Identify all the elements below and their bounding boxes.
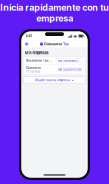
button[interactable]: Hosteleria Tax Logistics [24,57,85,64]
staticText: Tax [63,42,69,46]
button[interactable]: VER LIQUIDACION [56,67,83,72]
staticText: Hosteleria Tax Logistics [26,59,53,62]
staticText: Anadir nueva empresa [35,78,70,82]
staticText: Outsourcer [44,42,62,46]
staticText: Inicia rapidamente con tu empresa [0,2,109,24]
staticText: VER LIQUIDACION [58,68,82,71]
staticText: 9:41 [25,34,31,38]
button[interactable]: Comercio [24,65,85,74]
button[interactable]: Menu [24,41,29,47]
button[interactable]: Anadir nueva empresa [24,76,85,84]
staticText: + [72,78,74,82]
staticText: Mis empresas [24,50,48,55]
staticText: Comercio [26,66,41,70]
button[interactable]: VER INFORMACION [56,58,83,63]
staticText: VER INFORMACION [57,59,82,62]
staticText: CCO2019-22 [26,70,40,73]
button[interactable]: Outsourcer [21,40,87,47]
